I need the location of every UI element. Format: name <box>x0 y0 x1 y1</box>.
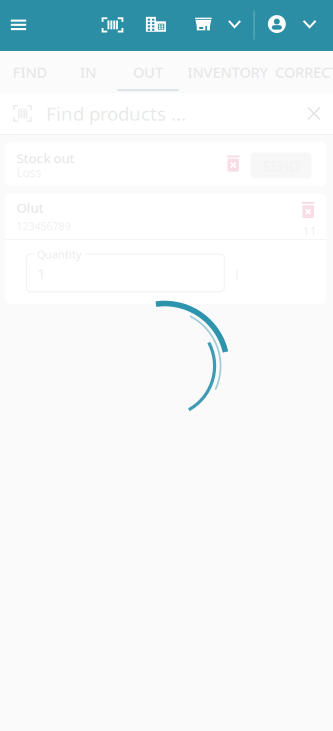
staticText: FIND <box>12 62 47 82</box>
button[interactable]: OUT <box>117 51 179 93</box>
button[interactable]: Account <box>268 3 328 45</box>
staticText: 11 <box>303 223 317 239</box>
staticText: l <box>235 266 238 283</box>
button[interactable]: Remove product <box>291 201 325 239</box>
staticText: Quantity <box>37 247 81 262</box>
staticText: 1 <box>37 264 45 283</box>
staticText: IN <box>80 62 96 82</box>
staticText: Loss <box>16 165 41 180</box>
button[interactable]: CORRECTION <box>273 51 333 93</box>
button[interactable]: INVENTORY <box>179 51 277 93</box>
staticText: 123456789 <box>16 219 70 233</box>
button[interactable]: Scan barcode <box>91 4 133 46</box>
button[interactable]: FIND <box>0 51 61 93</box>
button[interactable]: Menu <box>0 4 38 46</box>
staticText: Stock out <box>16 149 74 167</box>
button[interactable]: Company <box>135 3 177 45</box>
staticText: Find products ... <box>46 101 186 126</box>
button[interactable]: Delete <box>219 149 247 177</box>
staticText: CORRECTION <box>275 62 333 82</box>
staticText: INVENTORY <box>187 62 268 82</box>
button[interactable]: Clear <box>295 93 333 134</box>
staticText: OUT <box>133 62 163 82</box>
button[interactable]: Store <box>195 3 257 45</box>
staticText: Olut <box>16 199 43 216</box>
